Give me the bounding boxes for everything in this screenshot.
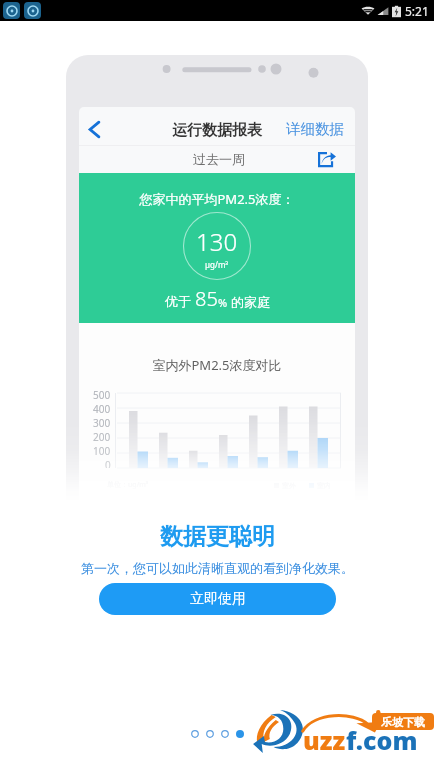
staticText: 0 (105, 458, 111, 468)
staticText: 乐坡下载 (381, 715, 425, 729)
staticText: 第一次，您可以如此清晰直观的看到净化效果。 (81, 560, 354, 576)
button[interactable]: 立即使用 (99, 583, 336, 615)
staticText: uzz (303, 723, 346, 757)
staticText: 过去一周 (81, 151, 355, 167)
staticText: 100 (93, 444, 111, 458)
staticText: 的家庭 (231, 294, 270, 310)
staticText: 300 (93, 416, 111, 430)
button[interactable]: Share (315, 147, 339, 171)
button[interactable]: Back (82, 117, 106, 141)
staticText: 您家中的平均PM2.5浓度： (79, 190, 355, 208)
staticText: 85 (195, 285, 218, 312)
staticText: 500 (93, 388, 111, 402)
staticText: 130 (196, 225, 238, 258)
staticText: µg/m³ (205, 259, 229, 270)
staticText: 室内外PM2.5浓度对比 (79, 356, 355, 374)
staticText: 400 (93, 402, 111, 416)
staticText: 5:21 (405, 3, 429, 19)
staticText: f.com (346, 723, 418, 757)
staticText: 200 (93, 430, 111, 444)
staticText: 立即使用 (190, 590, 246, 608)
staticText: 运行数据报表 (79, 121, 355, 140)
button[interactable]: 详细数据 (286, 120, 344, 138)
staticText: % (218, 295, 231, 310)
staticText: 数据更聪明 (160, 522, 275, 551)
staticText: 优于 (165, 292, 195, 310)
